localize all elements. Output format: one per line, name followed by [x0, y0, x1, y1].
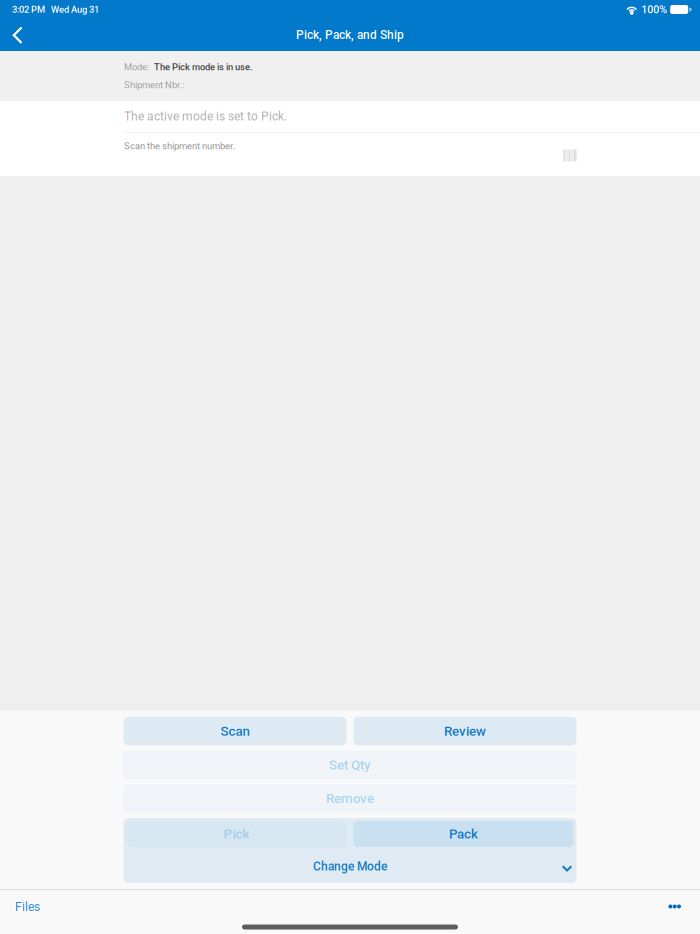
staticText: Remove [326, 791, 374, 806]
button[interactable]: Review [353, 717, 576, 745]
staticText: Pack [449, 826, 478, 842]
staticText: 100% [638, 3, 670, 16]
button[interactable]: Back [0, 20, 37, 50]
staticText: Mode: [124, 62, 149, 72]
staticText: Files [15, 900, 40, 914]
staticText: Change Mode [313, 860, 387, 873]
staticText: The active mode is set to Pick. [124, 110, 287, 123]
staticText: Set Qty [329, 757, 371, 772]
staticText: Review [444, 723, 486, 739]
button[interactable]: Remove [123, 784, 576, 813]
button[interactable]: Pick [126, 821, 346, 847]
staticText: 3:02 PM [12, 4, 45, 15]
button[interactable]: More options [654, 890, 700, 916]
button[interactable]: Files [0, 887, 55, 919]
button[interactable]: Pack [353, 821, 573, 847]
button[interactable]: Change Mode [123, 850, 576, 883]
staticText: Scan [220, 723, 249, 739]
staticText: Pick, Pack, and Ship [296, 28, 404, 42]
staticText: Wed Aug 31 [45, 4, 99, 15]
staticText: Scan the shipment number. [124, 141, 235, 151]
staticText: The Pick mode is in use. [154, 62, 253, 72]
button[interactable]: Scan [123, 717, 346, 745]
staticText: Shipment Nbr.: [124, 80, 184, 90]
staticText: Pick [223, 826, 249, 842]
button[interactable]: Set Qty [123, 751, 576, 779]
